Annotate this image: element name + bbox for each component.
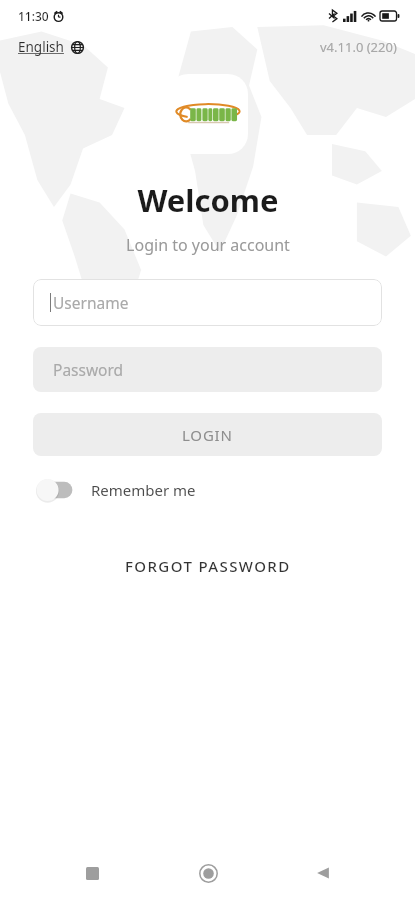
staticText: v4.11.0 (220)	[320, 38, 397, 56]
button[interactable]: English	[12, 34, 90, 60]
staticText: English	[18, 38, 64, 56]
staticText: Remember me	[91, 480, 196, 500]
button[interactable]: Remember me	[33, 473, 198, 507]
staticText: LOGIN	[182, 425, 233, 445]
button[interactable]: Recent apps	[68, 849, 116, 897]
button[interactable]: Home	[184, 849, 232, 897]
staticText: FORGOT PASSWORD	[125, 556, 291, 576]
button[interactable]: Password	[33, 347, 382, 392]
staticText: Login to your account	[126, 234, 290, 256]
staticText: 11:30	[18, 8, 49, 24]
staticText: Password	[53, 359, 124, 380]
button[interactable]: FORGOT PASSWORD	[111, 548, 305, 584]
staticText: Welcome	[137, 179, 279, 221]
button[interactable]: Back	[299, 849, 347, 897]
staticText: Username	[53, 292, 129, 313]
button[interactable]: LOGIN	[33, 413, 382, 456]
button[interactable]: Username	[33, 279, 382, 326]
